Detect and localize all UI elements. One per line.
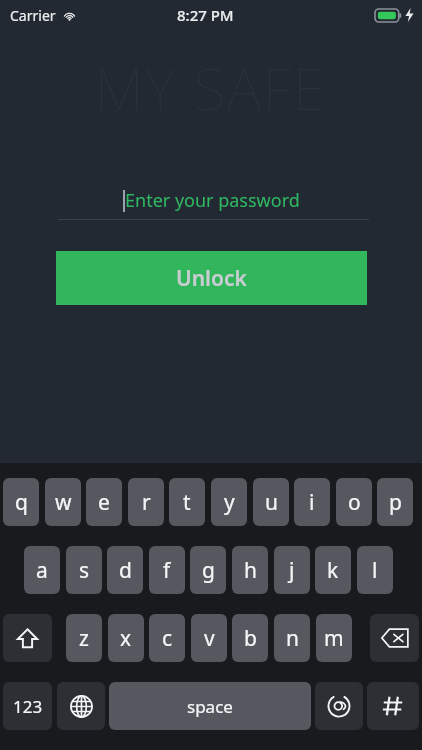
button[interactable]: v (191, 614, 227, 662)
staticText: f (163, 556, 171, 585)
staticText: o (348, 488, 361, 517)
staticText: b (244, 624, 257, 653)
button[interactable]: a (24, 546, 60, 594)
button[interactable]: b (232, 614, 268, 662)
button[interactable]: At sign (315, 682, 363, 730)
staticText: h (244, 556, 257, 585)
button[interactable]: space (109, 682, 311, 730)
button[interactable]: p (377, 478, 413, 526)
staticText: space (187, 695, 233, 718)
staticText: e (98, 488, 110, 517)
button[interactable]: z (66, 614, 102, 662)
button[interactable]: c (149, 614, 185, 662)
button[interactable]: o (336, 478, 372, 526)
staticText: y (224, 488, 235, 517)
staticText: s (79, 556, 90, 585)
staticText: n (286, 624, 299, 653)
staticText: i (309, 488, 315, 517)
staticText: v (204, 624, 215, 653)
staticText: c (162, 624, 173, 653)
staticText: d (119, 556, 132, 585)
button[interactable]: s (66, 546, 102, 594)
staticText: z (79, 624, 89, 653)
staticText: r (142, 488, 151, 517)
button[interactable]: j (274, 546, 310, 594)
staticText: g (202, 556, 215, 585)
button[interactable]: Switch keyboard language (57, 682, 105, 730)
staticText: m (324, 624, 344, 653)
button[interactable]: t (169, 478, 205, 526)
staticText: 8:27 PM (177, 5, 234, 25)
button[interactable]: r (128, 478, 164, 526)
button[interactable]: m (316, 614, 352, 662)
button[interactable]: q (3, 478, 39, 526)
staticText: l (372, 556, 378, 585)
staticText: q (15, 488, 28, 517)
staticText: t (183, 488, 191, 517)
button[interactable]: n (274, 614, 310, 662)
staticText: w (55, 488, 72, 517)
button[interactable]: i (294, 478, 330, 526)
button[interactable]: Backspace (370, 614, 419, 662)
staticText: k (327, 556, 339, 585)
button[interactable]: u (253, 478, 289, 526)
button[interactable]: Enter your password (56, 180, 367, 220)
staticText: Enter your password (125, 188, 300, 213)
staticText: p (389, 488, 402, 517)
staticText: j (289, 556, 295, 585)
button[interactable]: Shift (3, 614, 52, 662)
button[interactable]: Unlock (56, 251, 367, 305)
staticText: u (265, 488, 278, 517)
button[interactable]: e (86, 478, 122, 526)
staticText: Carrier (10, 6, 56, 25)
staticText: 123 (13, 695, 43, 718)
staticText: x (120, 624, 132, 653)
button[interactable]: w (45, 478, 81, 526)
button[interactable]: Number sign (367, 682, 419, 730)
button[interactable]: f (149, 546, 185, 594)
staticText: Unlock (176, 264, 247, 293)
staticText: a (36, 556, 48, 585)
button[interactable]: d (107, 546, 143, 594)
button[interactable]: l (357, 546, 393, 594)
button[interactable]: k (315, 546, 351, 594)
button[interactable]: x (108, 614, 144, 662)
button[interactable]: 123 (3, 682, 52, 730)
button[interactable]: h (232, 546, 268, 594)
button[interactable]: y (211, 478, 247, 526)
button[interactable]: g (190, 546, 226, 594)
